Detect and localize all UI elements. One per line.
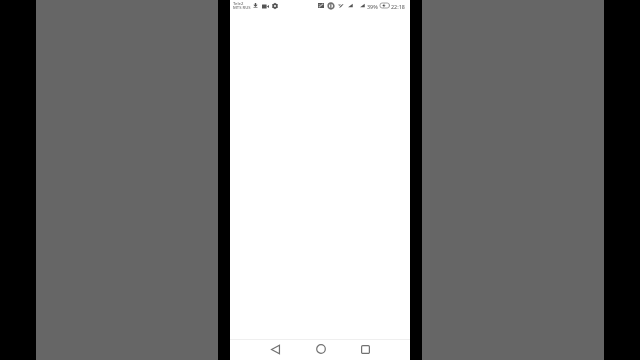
button[interactable]: Home: [298, 340, 343, 360]
button[interactable]: Recents: [343, 340, 388, 360]
button[interactable]: Back: [253, 340, 298, 360]
staticText: 39%: [367, 3, 378, 10]
staticText: MTS RUS: [233, 5, 251, 11]
staticText: 22:18: [391, 3, 405, 10]
staticText: Tele2: [233, 1, 244, 7]
